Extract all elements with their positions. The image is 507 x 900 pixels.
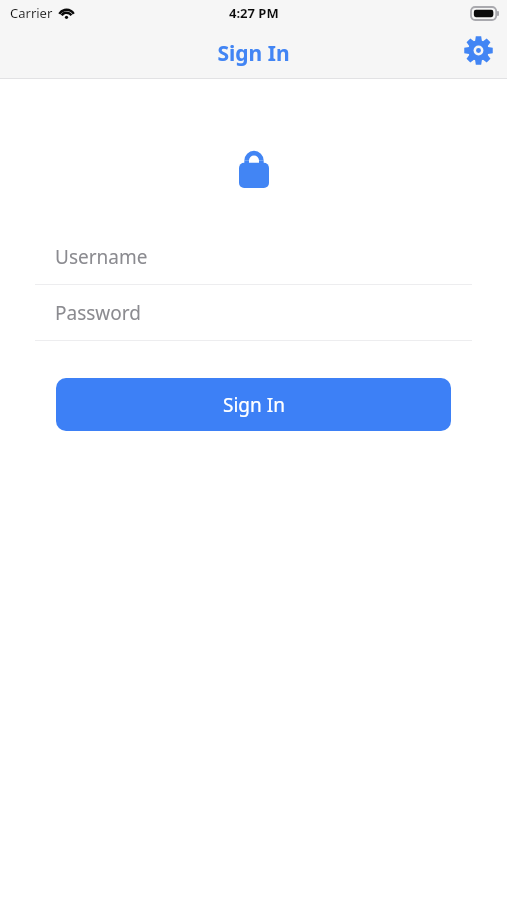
- button[interactable]: Settings: [459, 31, 497, 69]
- staticText: Carrier: [10, 4, 53, 22]
- staticText: Username: [55, 244, 148, 270]
- button[interactable]: Password: [35, 285, 472, 341]
- staticText: Password: [55, 300, 141, 326]
- button[interactable]: Username: [35, 229, 472, 285]
- staticText: Sign In: [223, 392, 285, 418]
- button[interactable]: Sign In: [56, 378, 451, 431]
- staticText: Sign In: [217, 39, 290, 68]
- staticText: 4:27 PM: [229, 4, 279, 22]
